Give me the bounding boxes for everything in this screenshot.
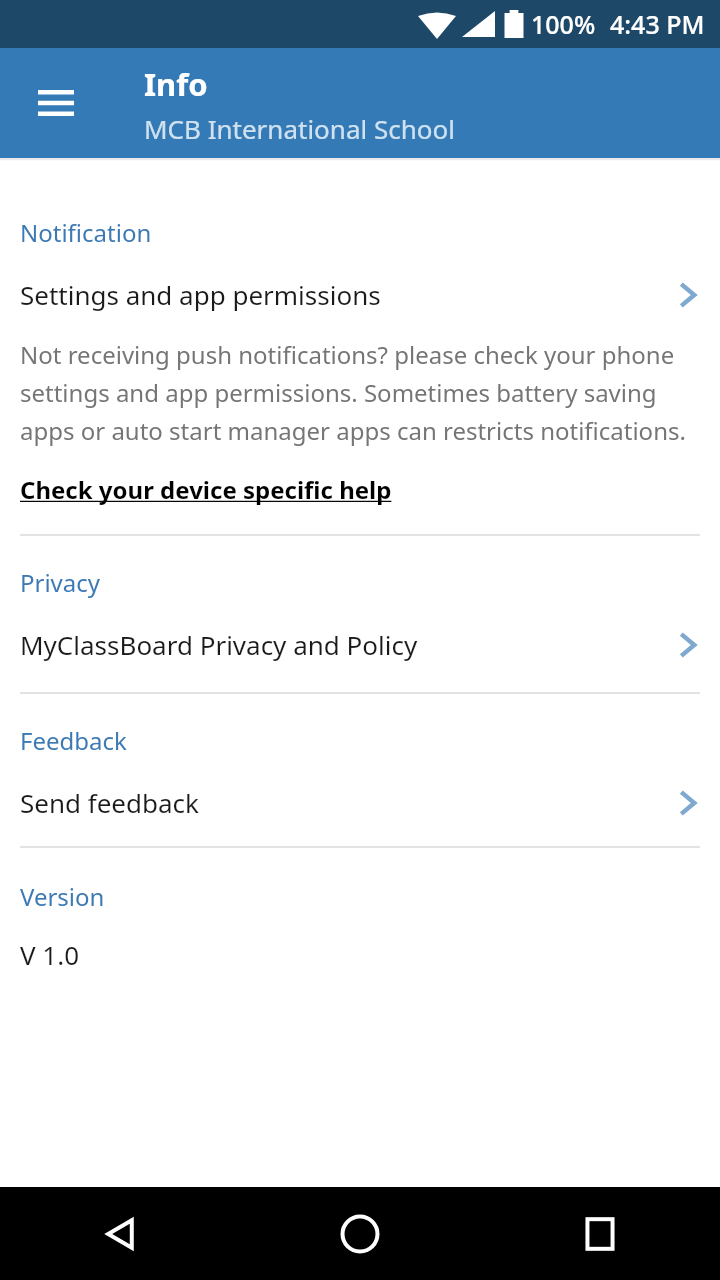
staticText: Version <box>20 880 105 913</box>
button[interactable]: Home <box>240 1187 480 1280</box>
staticText: Privacy <box>20 566 101 599</box>
staticText: Info <box>144 63 208 105</box>
staticText: Not receiving push notifications? please… <box>20 338 700 447</box>
button[interactable]: Settings and app permissions <box>0 273 720 316</box>
button[interactable]: Send feedback <box>0 781 720 824</box>
staticText: MCB International School <box>144 111 455 146</box>
staticText: Settings and app permissions <box>20 277 674 312</box>
staticText: Notification <box>20 216 152 249</box>
staticText: V 1.0 <box>20 937 80 972</box>
button[interactable]: MyClassBoard Privacy and Policy <box>0 623 720 666</box>
button[interactable]: Recent apps <box>480 1187 720 1280</box>
staticText: Check your device specific help <box>20 473 392 506</box>
button[interactable]: Check your device specific help <box>20 473 392 506</box>
staticText: MyClassBoard Privacy and Policy <box>20 627 674 662</box>
staticText: Feedback <box>20 724 127 757</box>
staticText: Send feedback <box>20 785 674 820</box>
staticText: 100% <box>531 7 596 41</box>
button[interactable]: Back <box>0 1187 240 1280</box>
staticText: 4:43 PM <box>610 7 705 41</box>
button[interactable]: Open navigation menu <box>14 61 98 145</box>
